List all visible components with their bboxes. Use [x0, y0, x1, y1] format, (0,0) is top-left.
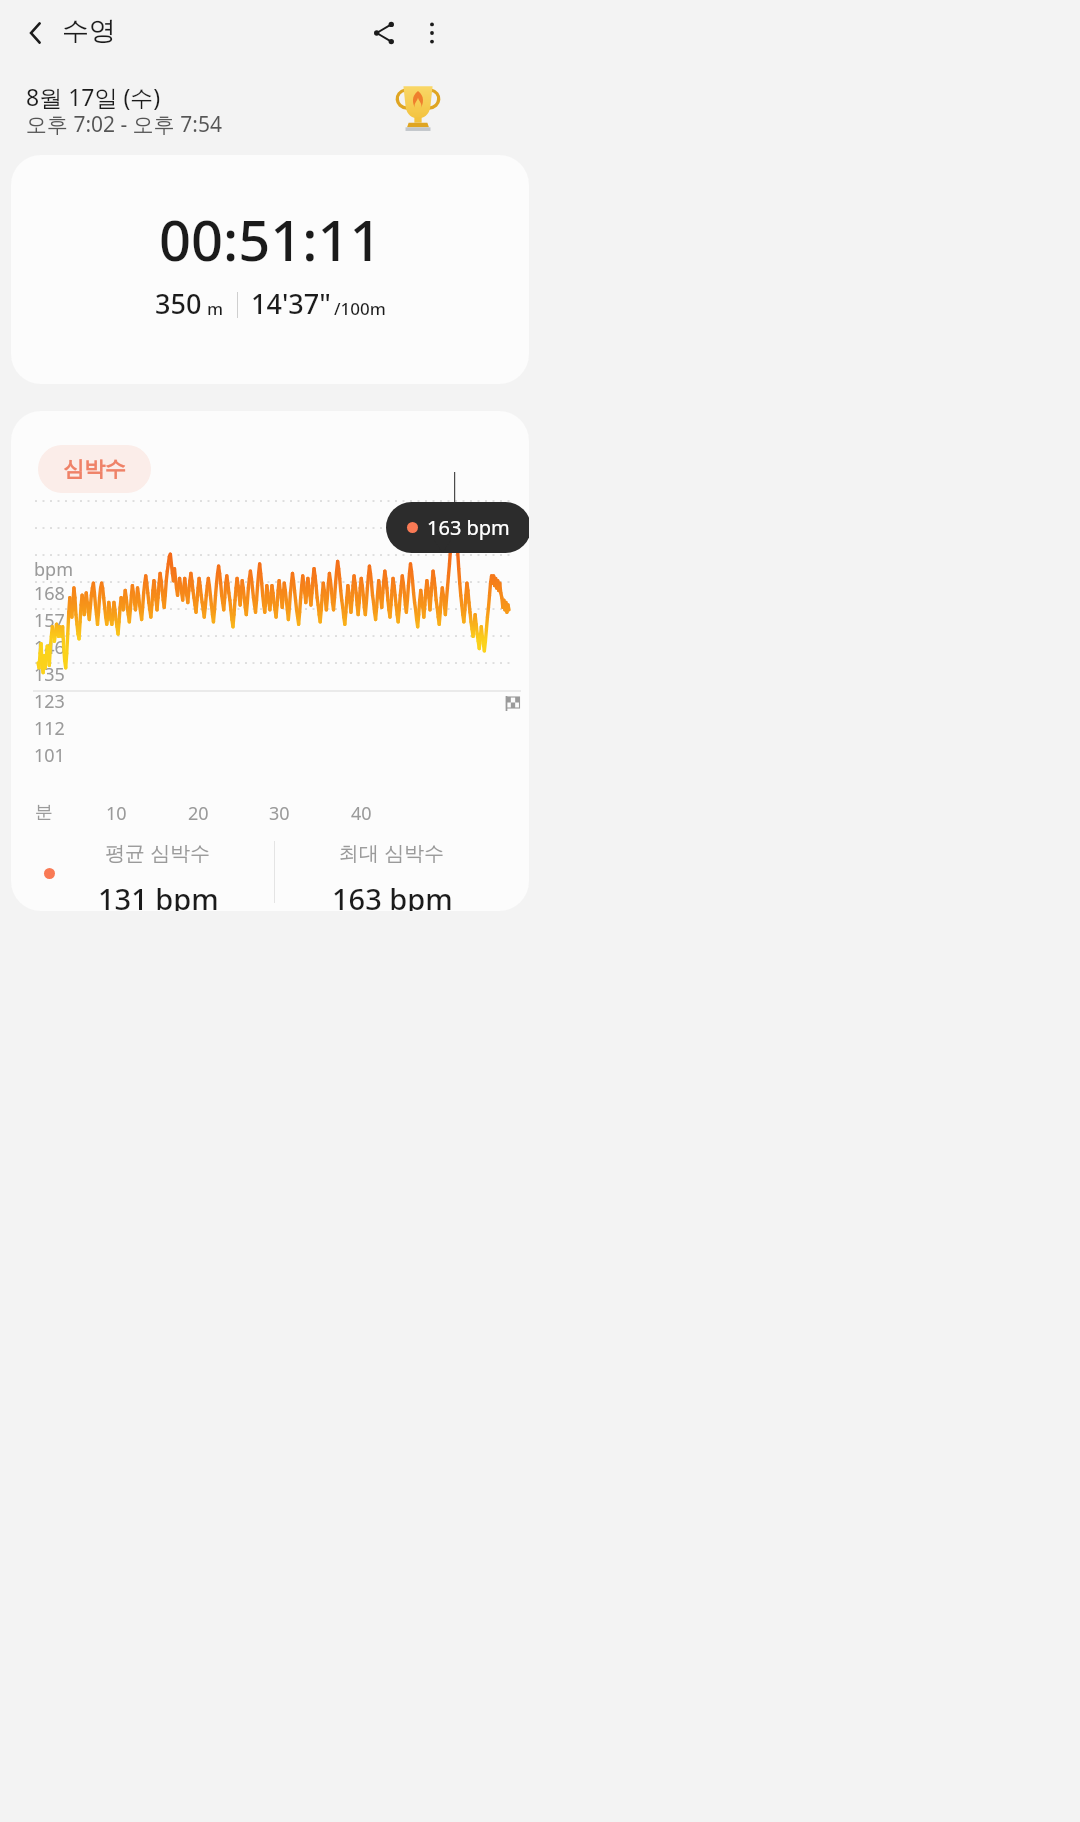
- staticText: 최대 심박수: [339, 839, 445, 866]
- staticText: 163 bpm: [332, 879, 453, 911]
- staticText: m: [207, 297, 224, 320]
- button[interactable]: More options: [404, 5, 460, 61]
- staticText: 131 bpm: [98, 879, 219, 911]
- staticText: 10: [106, 801, 127, 826]
- staticText: bpm: [34, 557, 73, 582]
- staticText: 112: [34, 716, 65, 741]
- staticText: 168: [34, 581, 65, 606]
- staticText: 30: [269, 801, 290, 826]
- staticText: 20: [188, 801, 209, 826]
- staticText: 123: [34, 689, 65, 714]
- staticText: 146: [34, 635, 65, 660]
- staticText: /100m: [334, 297, 386, 320]
- staticText: 14'37": [251, 285, 331, 322]
- staticText: 분: [35, 801, 53, 824]
- button[interactable]: 00:51:11: [11, 155, 529, 384]
- staticText: 수영: [62, 14, 116, 48]
- staticText: 평균 심박수: [105, 839, 211, 866]
- staticText: 00:51:11: [159, 201, 382, 277]
- staticText: 101: [34, 743, 65, 768]
- staticText: 40: [351, 801, 372, 826]
- staticText: 157: [34, 608, 65, 633]
- button[interactable]: 심박수: [38, 445, 151, 493]
- button[interactable]: Share: [356, 5, 412, 61]
- staticText: 오후 7:02 - 오후 7:54: [26, 110, 222, 139]
- button[interactable]: Back: [8, 5, 64, 61]
- staticText: 163 bpm: [427, 514, 510, 541]
- staticText: 8월 17일 (수): [26, 81, 161, 112]
- staticText: 135: [34, 662, 65, 687]
- staticText: 심박수: [63, 456, 126, 482]
- staticText: 350: [155, 285, 202, 322]
